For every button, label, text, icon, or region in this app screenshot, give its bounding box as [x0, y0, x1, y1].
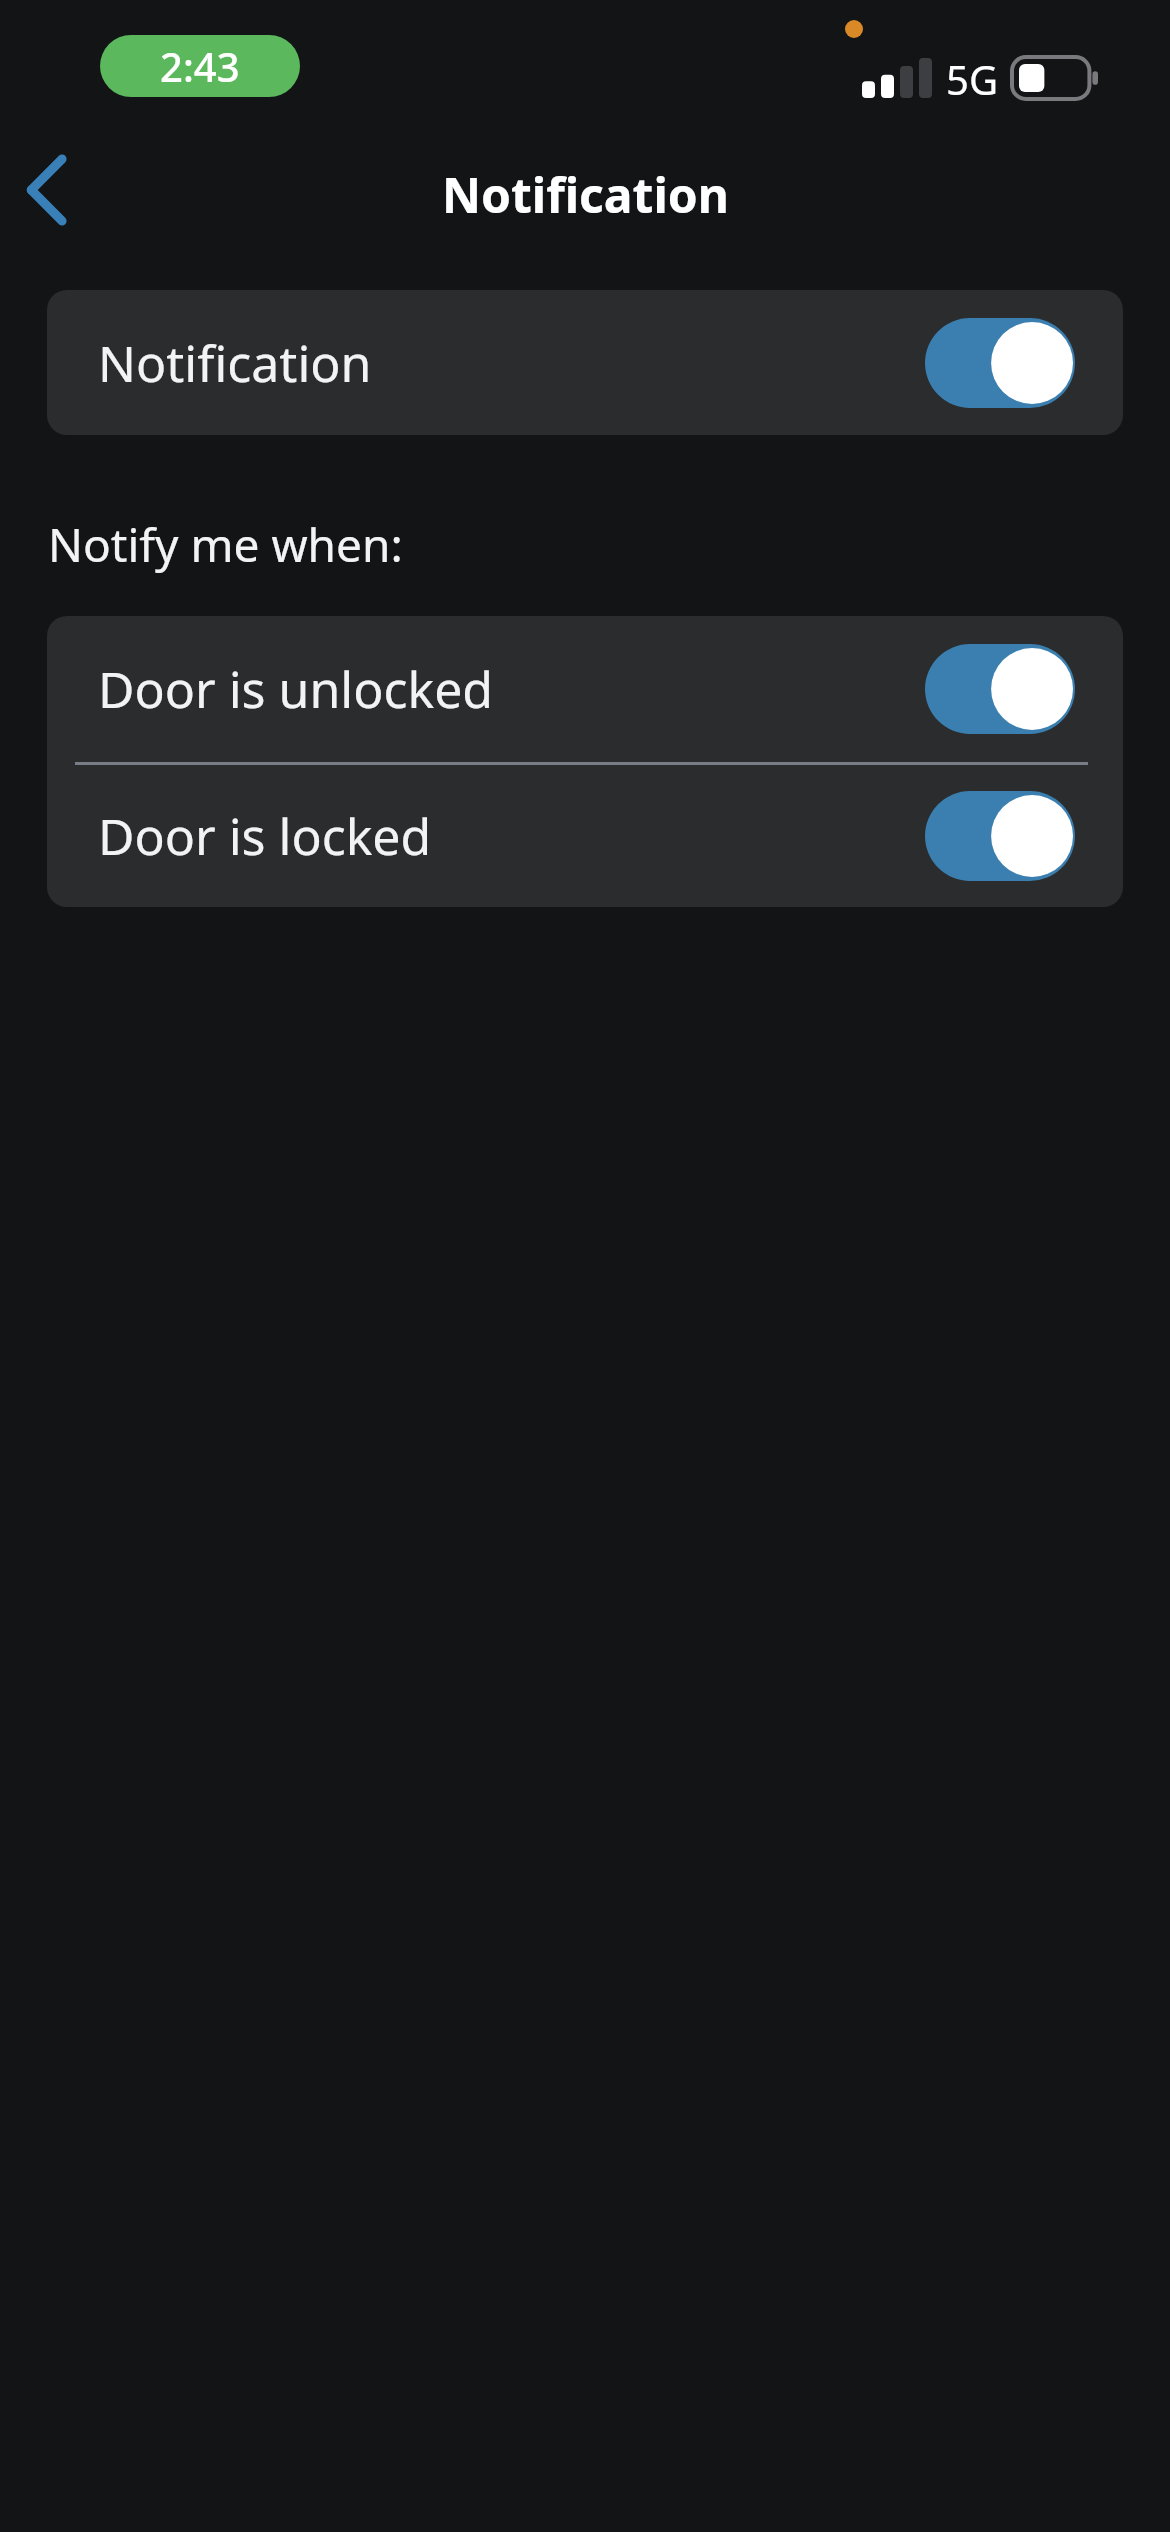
button[interactable]: Door is locked	[47, 765, 1123, 907]
button[interactable]: Door is unlocked	[47, 616, 1123, 762]
staticText: 2:43	[160, 39, 240, 93]
button[interactable]: Notification	[47, 290, 1123, 435]
staticText: 5G	[946, 52, 998, 106]
button[interactable]: Toggle	[925, 644, 1075, 734]
staticText: Door is unlocked	[98, 655, 494, 723]
staticText: Notify me when:	[48, 513, 403, 576]
staticText: Notification	[442, 162, 729, 227]
button[interactable]: Toggle	[925, 791, 1075, 881]
button[interactable]: Toggle	[925, 318, 1075, 408]
staticText: Notification	[98, 329, 372, 397]
button[interactable]: Back	[0, 142, 96, 238]
staticText: Door is locked	[98, 802, 432, 870]
